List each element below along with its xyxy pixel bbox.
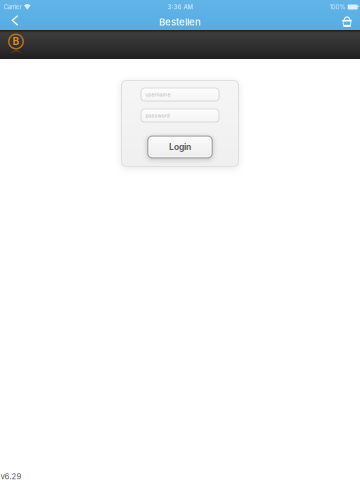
button[interactable]: Shopping basket [334,14,360,30]
button[interactable]: Login [147,135,213,158]
staticText: Login [169,142,191,152]
staticText: v6.29 [0,472,21,480]
staticText: password [145,112,169,119]
staticText: 100% [329,3,345,11]
button[interactable]: Home [1,30,31,59]
staticText: username [145,91,170,98]
staticText: Bestellen [159,16,201,28]
staticText: Carrier [3,3,21,11]
staticText: B [12,35,19,47]
button[interactable]: Back [2,14,28,30]
staticText: 3:36 AM [167,3,192,11]
